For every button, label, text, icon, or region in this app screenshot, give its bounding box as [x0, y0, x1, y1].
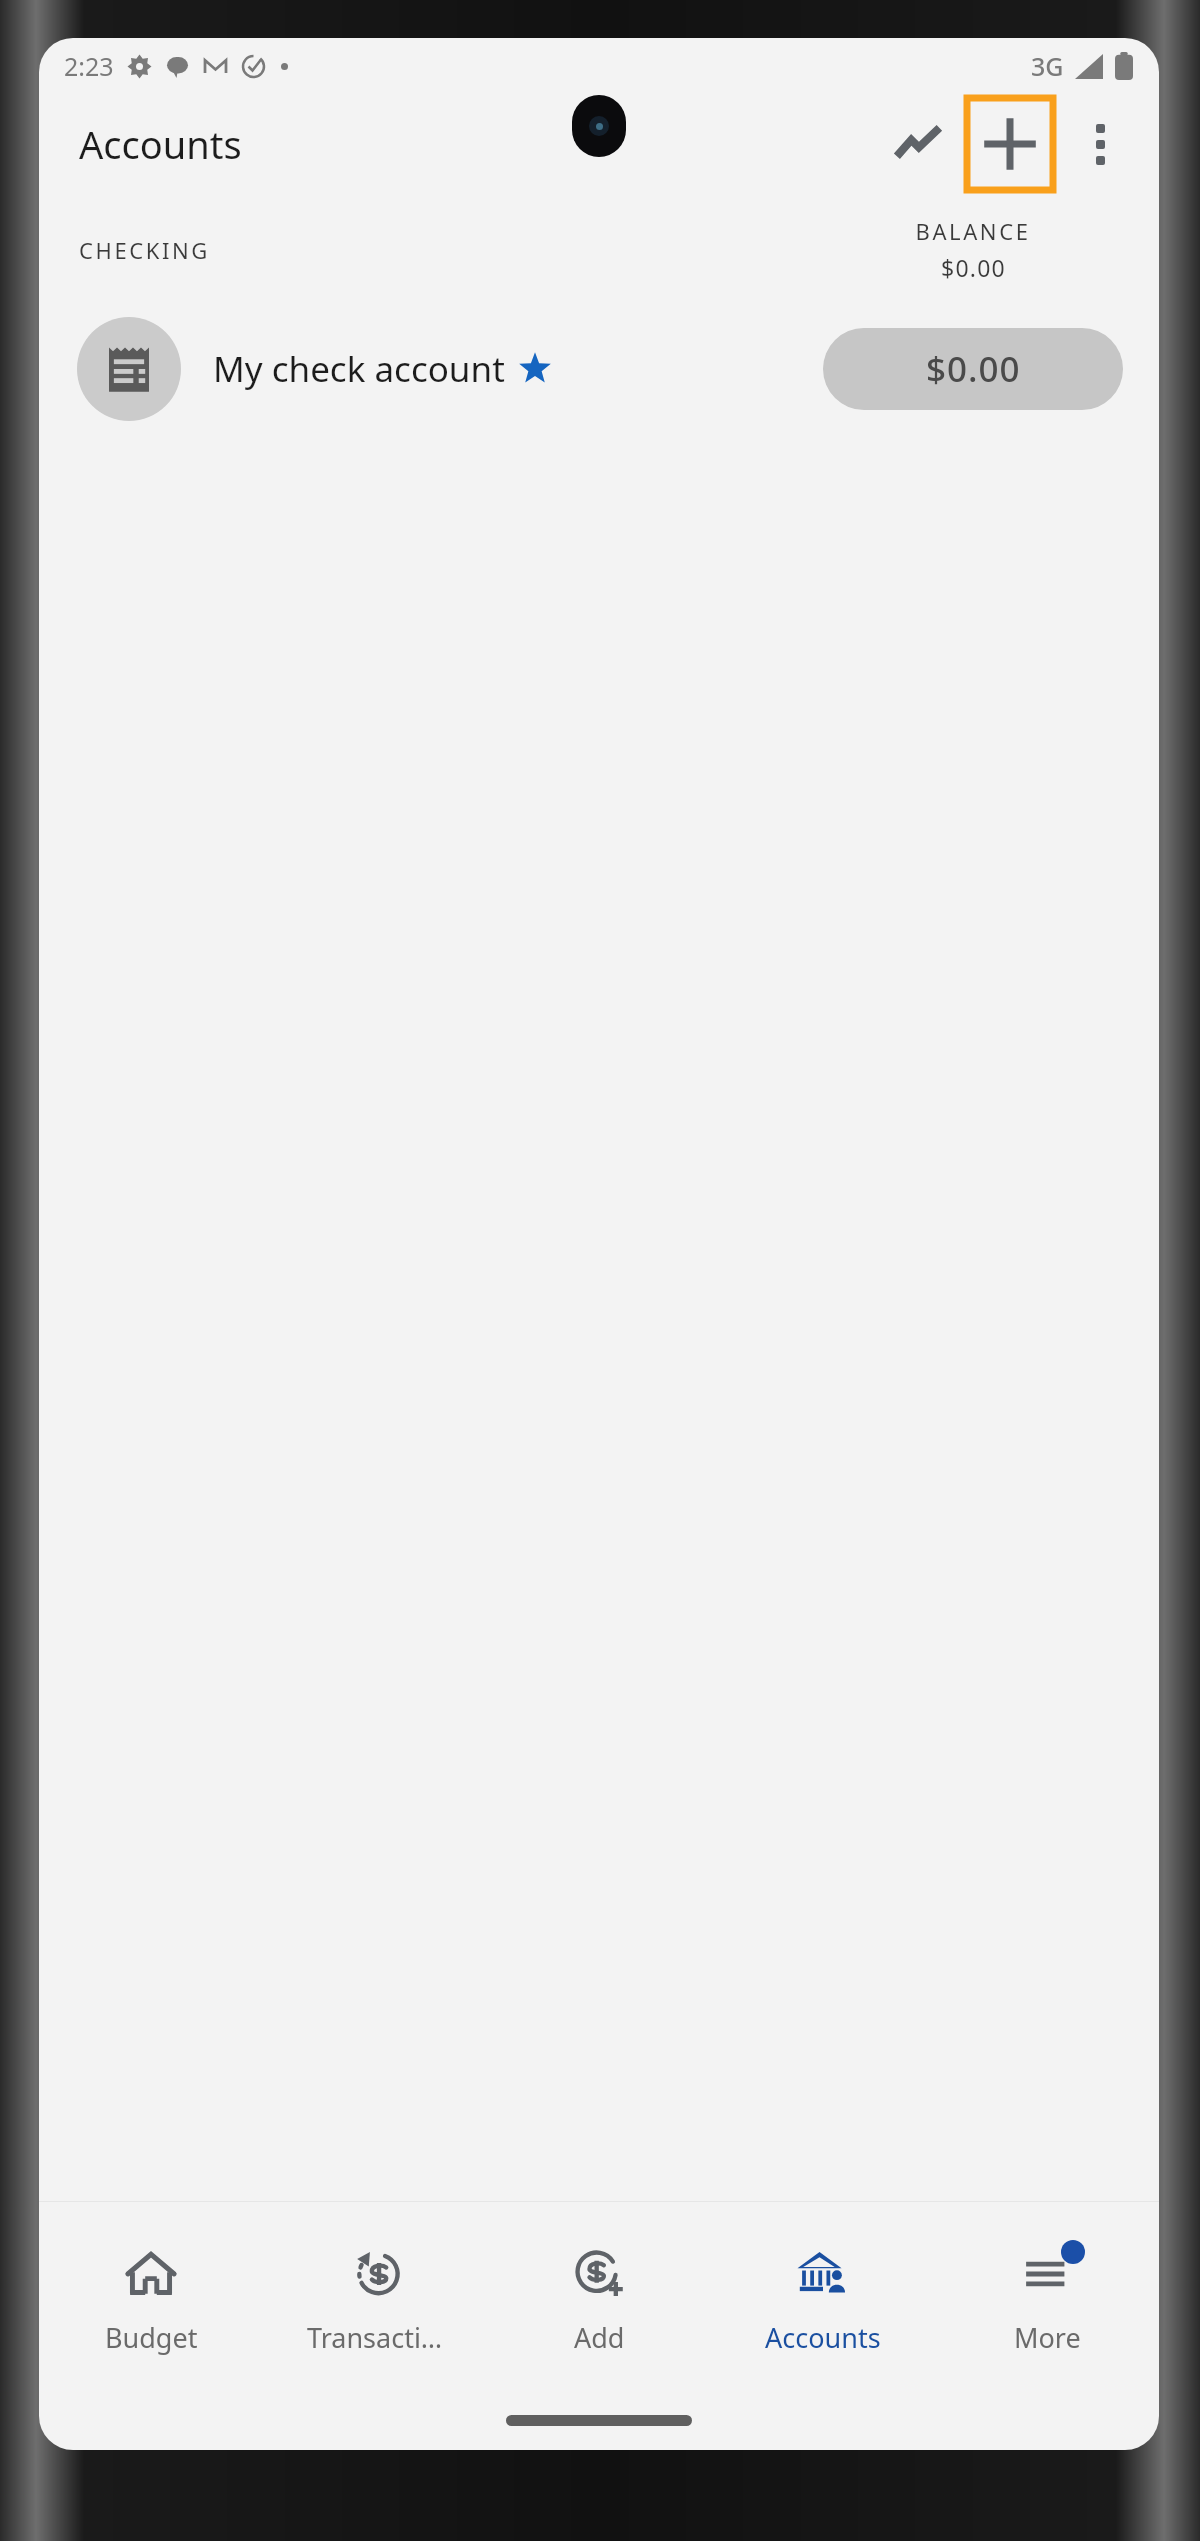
button[interactable]: Budget: [39, 2202, 263, 2398]
button[interactable]: Add: [487, 2202, 711, 2398]
button[interactable]: More options: [1061, 105, 1139, 183]
staticText: Accounts: [765, 2319, 881, 2356]
staticText: BALANCE: [915, 216, 1031, 246]
button[interactable]: Add account: [967, 98, 1053, 190]
button[interactable]: More: [935, 2202, 1159, 2398]
staticText: Budget: [105, 2319, 198, 2356]
button[interactable]: Accounts: [711, 2202, 935, 2398]
button[interactable]: $0.00: [823, 328, 1123, 410]
staticText: Accounts: [79, 118, 242, 170]
button[interactable]: Trends: [879, 105, 957, 183]
staticText: My check account: [213, 345, 505, 393]
staticText: CHECKING: [79, 235, 210, 265]
staticText: 2:23: [64, 49, 114, 83]
button[interactable]: Transacti…: [263, 2202, 487, 2398]
staticText: $0.00: [926, 345, 1021, 393]
staticText: 3G: [1031, 49, 1064, 83]
button[interactable]: My check account: [39, 309, 1159, 429]
staticText: $0.00: [941, 252, 1006, 283]
staticText: More: [1014, 2319, 1081, 2356]
staticText: Transacti…: [307, 2319, 443, 2356]
staticText: Add: [574, 2319, 625, 2356]
